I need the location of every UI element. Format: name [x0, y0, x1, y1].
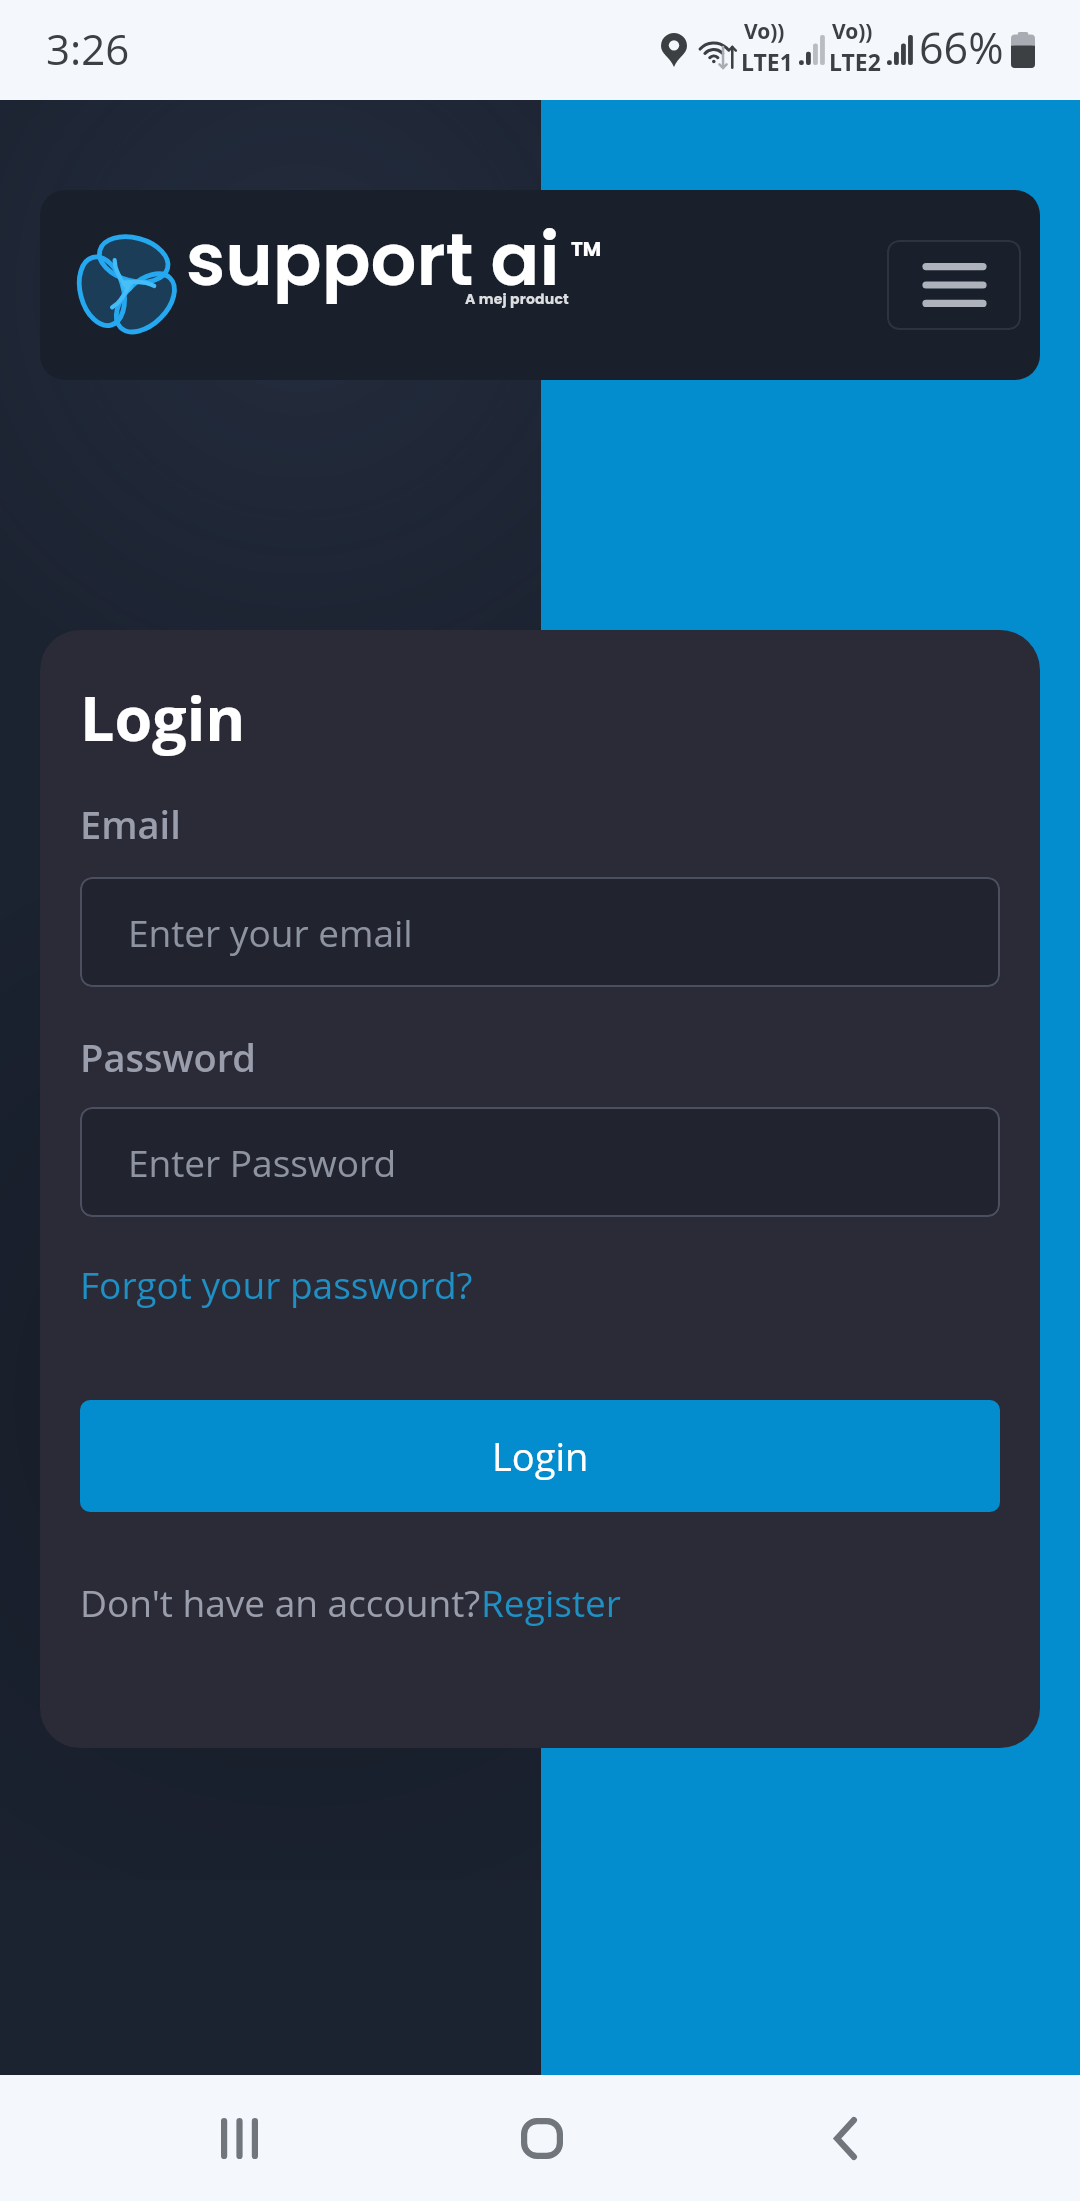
staticText: support ai — [186, 209, 560, 310]
staticText: Login — [492, 1430, 589, 1482]
button[interactable]: Register — [481, 1577, 621, 1627]
button[interactable]: Enter your email — [80, 877, 1000, 987]
staticText: Vo)) — [744, 17, 785, 46]
button[interactable]: Recent apps — [159, 2075, 319, 2201]
staticText: Don't have an account? — [80, 1577, 481, 1627]
staticText: LTE1 — [741, 46, 793, 77]
button[interactable]: Forgot your password? — [80, 1259, 473, 1309]
staticText: Email — [80, 798, 181, 850]
staticText: 3:26 — [46, 20, 130, 77]
button[interactable]: Open navigation menu — [887, 240, 1021, 330]
button[interactable]: Home — [462, 2075, 622, 2201]
staticText: Login — [80, 676, 246, 759]
staticText: TM — [571, 235, 602, 263]
staticText: Register — [481, 1577, 621, 1627]
button[interactable]: Enter Password — [80, 1107, 1000, 1217]
button[interactable]: Back — [765, 2075, 925, 2201]
staticText: Enter Password — [128, 1137, 397, 1187]
staticText: Password — [80, 1031, 256, 1083]
staticText: LTE2 — [829, 46, 881, 77]
staticText: 66% — [919, 18, 1004, 77]
button[interactable]: Login — [80, 1400, 1000, 1512]
staticText: Vo)) — [832, 17, 873, 46]
staticText: A mej product — [465, 289, 569, 309]
staticText: Enter your email — [128, 907, 413, 957]
staticText: Forgot your password? — [80, 1259, 473, 1309]
